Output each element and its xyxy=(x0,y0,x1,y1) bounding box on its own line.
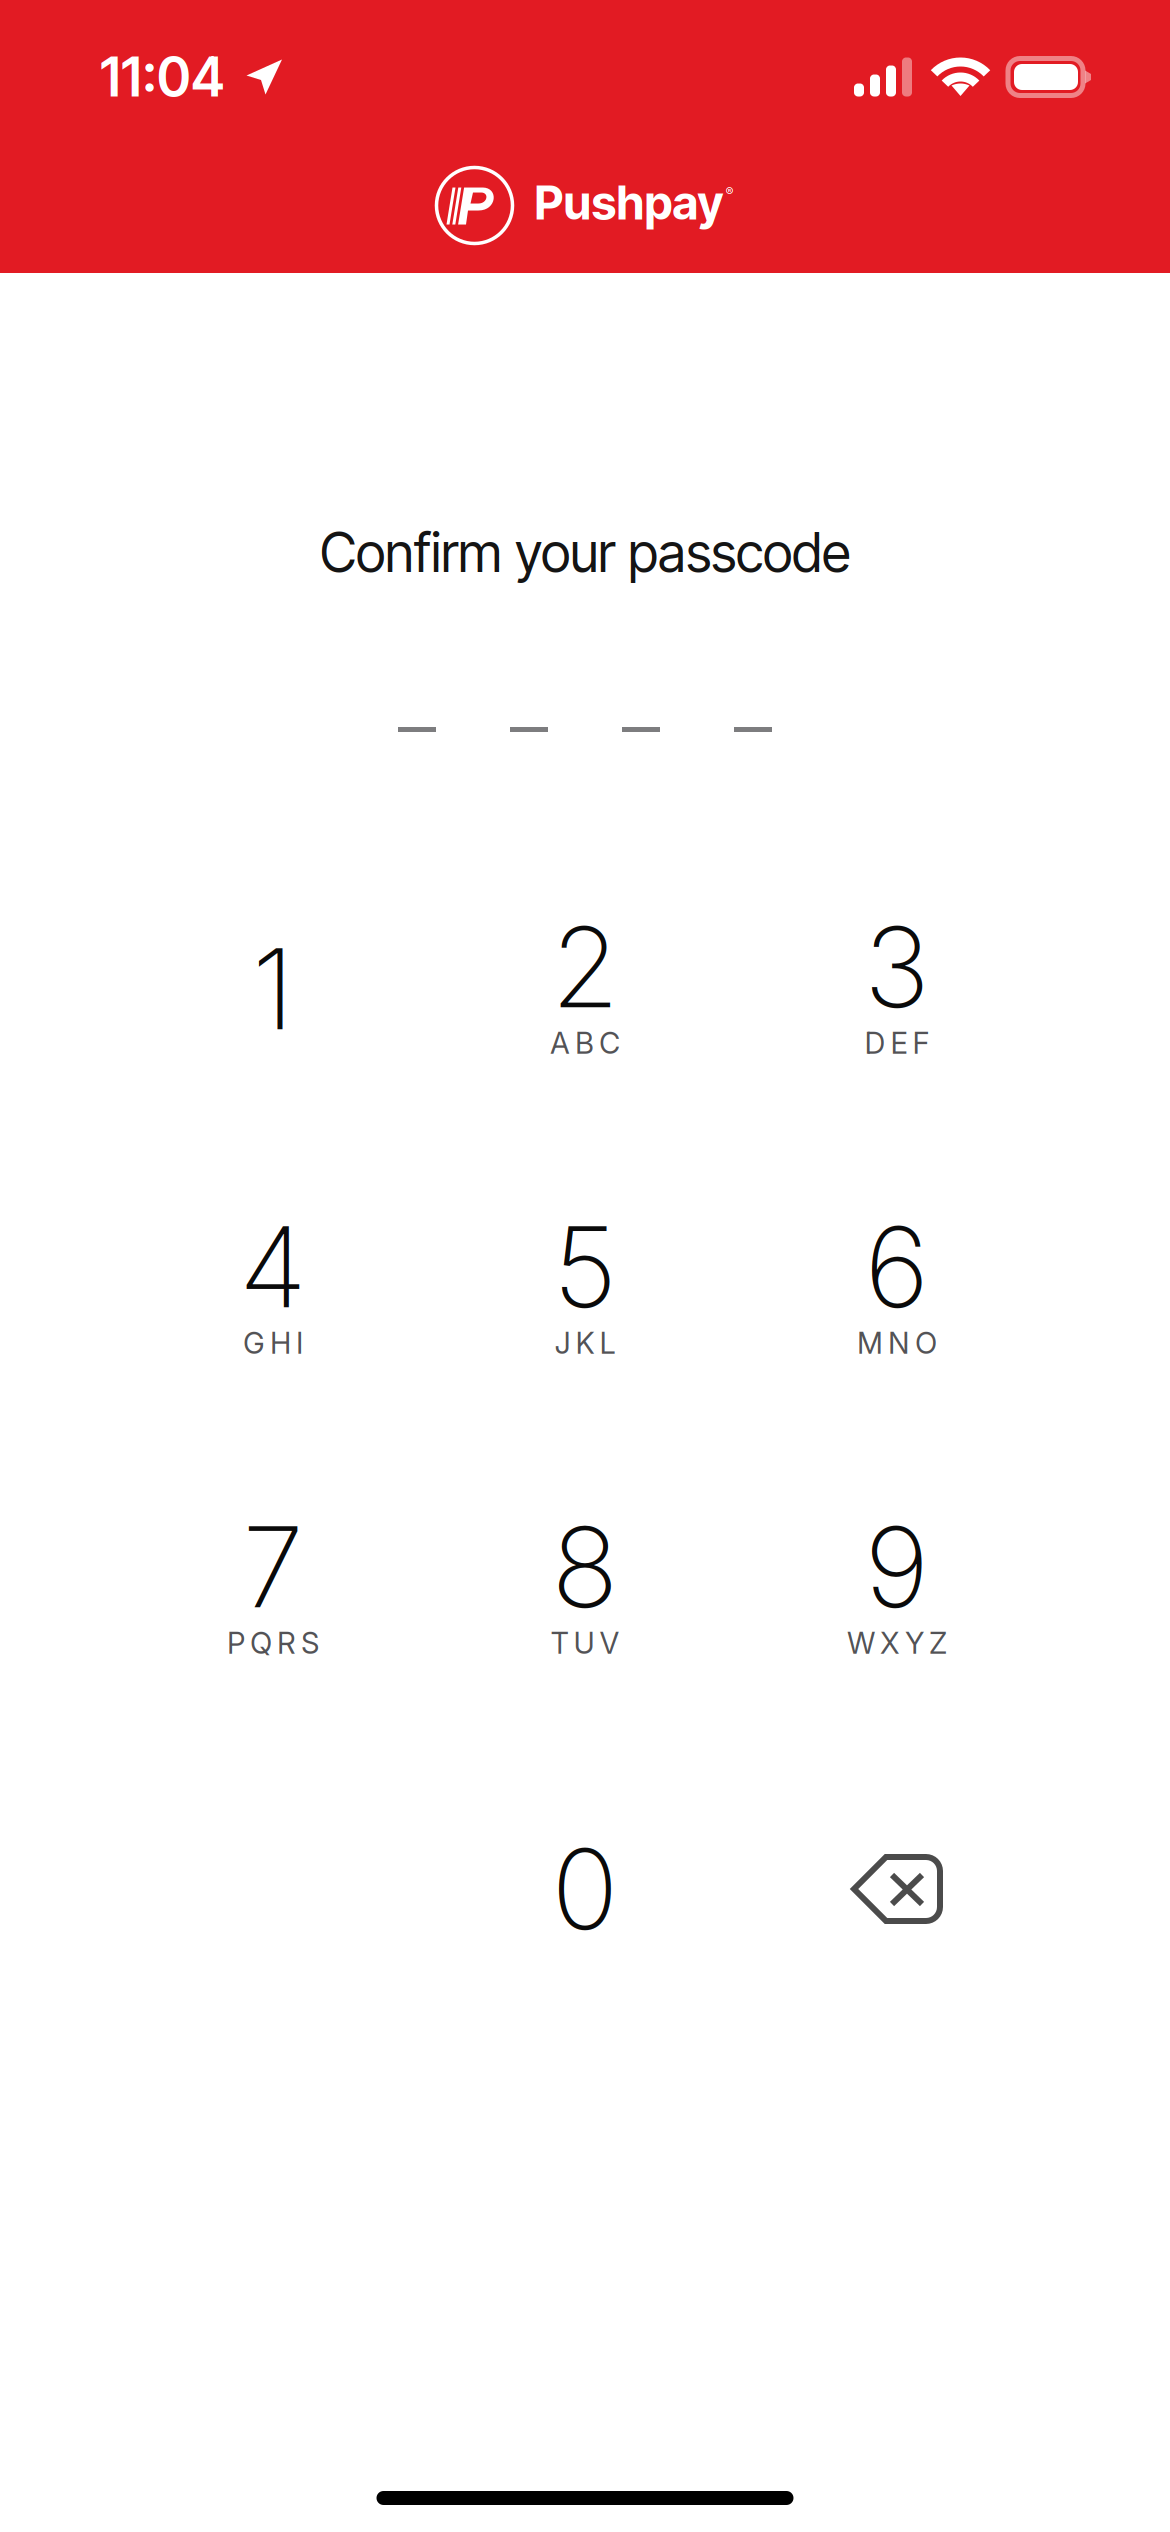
staticText: Pushpay xyxy=(534,174,723,231)
button[interactable]: 0 xyxy=(429,1739,741,2039)
staticText: MNO xyxy=(857,1325,937,1361)
staticText: 4 xyxy=(239,1200,307,1334)
staticText: 6 xyxy=(864,1200,929,1334)
staticText: 0 xyxy=(551,1822,618,1956)
staticText: ® xyxy=(725,184,733,199)
button[interactable]: Delete xyxy=(741,1739,1053,2039)
staticText: WXYZ xyxy=(847,1625,947,1661)
staticText: 7 xyxy=(242,1500,303,1634)
button[interactable]: 6 xyxy=(741,1139,1053,1439)
staticText: ABC xyxy=(550,1025,620,1061)
staticText: 11:04 xyxy=(100,45,225,109)
staticText: 1 xyxy=(252,922,294,1056)
staticText: 3 xyxy=(864,900,930,1034)
staticText: 8 xyxy=(551,1500,618,1634)
button[interactable]: 1 xyxy=(117,839,429,1139)
staticText: DEF xyxy=(864,1025,929,1061)
staticText: JKL xyxy=(554,1325,615,1361)
staticText: 9 xyxy=(864,1500,929,1634)
button[interactable]: 4 xyxy=(117,1139,429,1439)
staticText: TUV xyxy=(550,1625,619,1661)
staticText: 5 xyxy=(553,1200,617,1334)
button[interactable]: 2 xyxy=(429,839,741,1139)
staticText: PQRS xyxy=(227,1625,319,1661)
button[interactable]: 3 xyxy=(741,839,1053,1139)
button[interactable]: 9 xyxy=(741,1439,1053,1739)
staticText: Confirm your passcode xyxy=(320,520,850,585)
button[interactable]: 8 xyxy=(429,1439,741,1739)
staticText: GHI xyxy=(243,1325,303,1361)
staticText: 2 xyxy=(551,900,619,1034)
button[interactable]: 7 xyxy=(117,1439,429,1739)
button[interactable]: 5 xyxy=(429,1139,741,1439)
